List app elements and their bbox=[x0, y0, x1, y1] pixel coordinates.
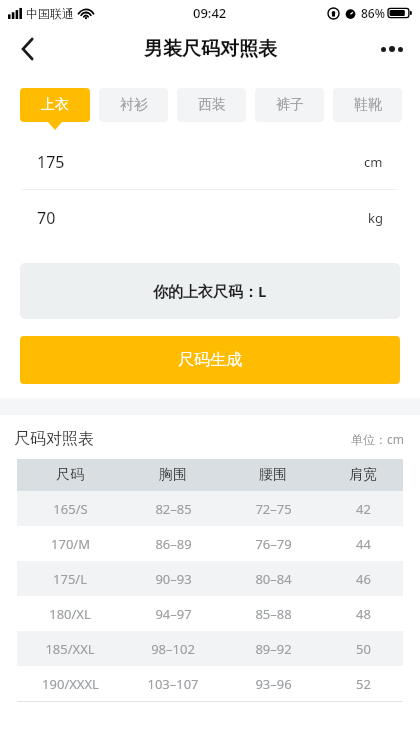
staticText: 185/XXL bbox=[45, 640, 95, 658]
staticText: 89–92 bbox=[255, 640, 292, 658]
button[interactable]: 180/XL bbox=[17, 596, 403, 631]
staticText: 170/M bbox=[51, 535, 90, 553]
staticText: 男装尺码对照表 bbox=[144, 37, 277, 61]
staticText: 西装 bbox=[198, 96, 226, 114]
staticText: 鞋靴 bbox=[354, 96, 382, 114]
staticText: 76–79 bbox=[255, 535, 292, 553]
staticText: 上衣 bbox=[41, 96, 69, 114]
staticText: 中国联通 bbox=[26, 6, 74, 21]
staticText: 44 bbox=[356, 535, 371, 553]
staticText: 单位：cm bbox=[351, 431, 404, 447]
button[interactable]: 170/M bbox=[17, 526, 403, 561]
button[interactable]: More options bbox=[370, 27, 414, 71]
staticText: 90–93 bbox=[155, 570, 192, 588]
staticText: 裤子 bbox=[276, 96, 304, 114]
staticText: 肩宽 bbox=[349, 466, 377, 484]
staticText: 86–89 bbox=[155, 535, 192, 553]
staticText: 腰围 bbox=[259, 466, 287, 484]
button[interactable]: 你的上衣尺码：L bbox=[20, 263, 400, 319]
staticText: 尺码 bbox=[56, 466, 84, 484]
button[interactable]: 裤子 bbox=[255, 88, 324, 122]
staticText: 175 bbox=[37, 151, 65, 173]
staticText: 180/XL bbox=[49, 605, 91, 623]
staticText: 42 bbox=[356, 500, 371, 518]
button[interactable]: 尺码生成 bbox=[20, 336, 400, 384]
staticText: 尺码生成 bbox=[178, 350, 242, 370]
button[interactable]: 175/L bbox=[17, 561, 403, 596]
staticText: 48 bbox=[356, 605, 371, 623]
staticText: 190/XXXL bbox=[42, 675, 99, 693]
staticText: 09:42 bbox=[193, 4, 227, 22]
staticText: 胸围 bbox=[159, 466, 187, 484]
button[interactable]: 185/XXL bbox=[17, 631, 403, 666]
button[interactable]: 70 bbox=[20, 190, 400, 245]
staticText: 165/S bbox=[53, 500, 88, 518]
staticText: 72–75 bbox=[255, 500, 292, 518]
staticText: 46 bbox=[356, 570, 371, 588]
button[interactable]: 165/S bbox=[17, 491, 403, 526]
button[interactable]: Back bbox=[6, 27, 50, 71]
button[interactable]: 上衣 bbox=[20, 88, 90, 130]
button[interactable]: 190/XXXL bbox=[17, 666, 403, 701]
staticText: 175/L bbox=[53, 570, 87, 588]
staticText: 尺码对照表 bbox=[14, 429, 94, 449]
staticText: 衬衫 bbox=[120, 96, 148, 114]
staticText: 52 bbox=[356, 675, 371, 693]
staticText: 70 bbox=[37, 207, 56, 229]
staticText: 103–107 bbox=[147, 675, 199, 693]
staticText: 98–102 bbox=[151, 640, 195, 658]
staticText: 93–96 bbox=[255, 675, 292, 693]
staticText: 86% bbox=[361, 5, 385, 21]
staticText: 80–84 bbox=[255, 570, 292, 588]
button[interactable]: 175 bbox=[20, 134, 400, 189]
button[interactable]: 鞋靴 bbox=[333, 88, 402, 122]
button[interactable]: 西装 bbox=[177, 88, 246, 122]
staticText: 94–97 bbox=[155, 605, 192, 623]
button[interactable]: 衬衫 bbox=[99, 88, 168, 122]
staticText: cm bbox=[364, 153, 383, 171]
staticText: kg bbox=[368, 209, 383, 227]
staticText: 82–85 bbox=[155, 500, 192, 518]
staticText: 你的上衣尺码：L bbox=[153, 281, 267, 301]
staticText: 85–88 bbox=[255, 605, 292, 623]
staticText: 50 bbox=[356, 640, 371, 658]
